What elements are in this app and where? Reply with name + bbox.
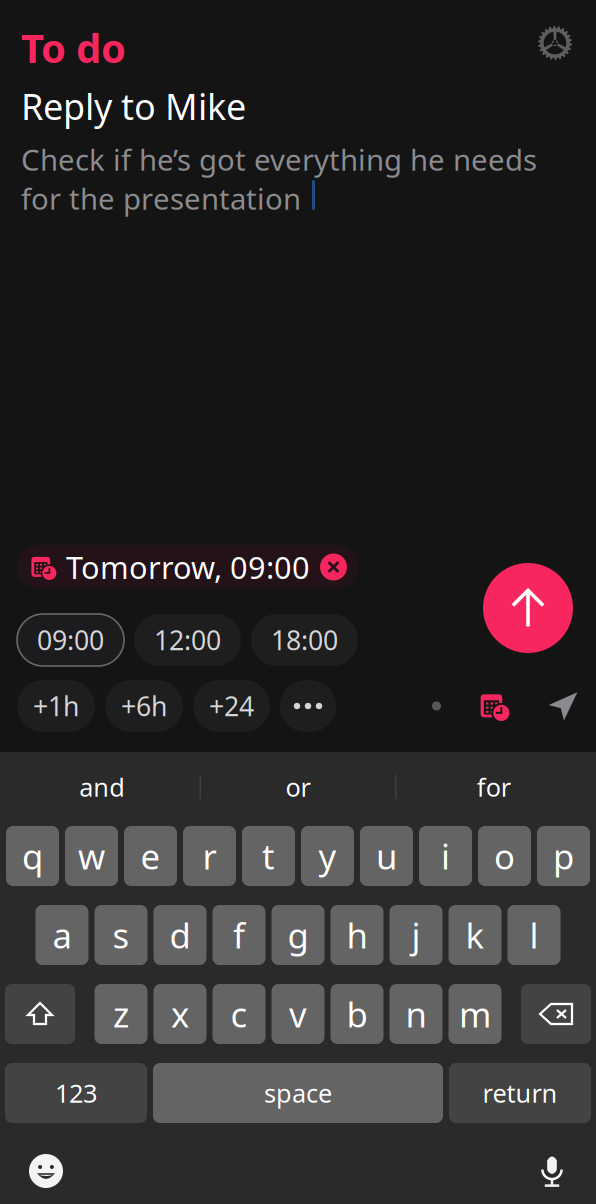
button[interactable]: w xyxy=(65,826,118,886)
staticText: or xyxy=(285,770,310,804)
staticText: 18:00 xyxy=(271,622,338,658)
button[interactable]: m xyxy=(448,984,501,1044)
staticText: c xyxy=(230,991,247,1037)
staticText: i xyxy=(441,833,450,879)
button[interactable]: u xyxy=(360,826,413,886)
button[interactable]: Emoji xyxy=(29,1154,63,1188)
button[interactable]: Tomorrow, 09:00 xyxy=(17,545,358,589)
staticText: e xyxy=(140,833,160,879)
staticText: r xyxy=(202,833,216,879)
button[interactable]: Pick date xyxy=(479,691,509,721)
button[interactable]: z xyxy=(94,984,147,1044)
button[interactable]: g xyxy=(271,905,324,965)
button[interactable]: 18:00 xyxy=(251,614,358,666)
staticText: Check if he’s got everything he needs fo… xyxy=(21,140,537,218)
button[interactable]: space xyxy=(153,1063,443,1123)
staticText: y xyxy=(318,833,336,879)
button[interactable]: and xyxy=(5,765,200,809)
staticText: z xyxy=(113,991,129,1037)
button[interactable]: t xyxy=(242,826,295,886)
staticText: w xyxy=(78,833,105,879)
button[interactable]: c xyxy=(212,984,265,1044)
button[interactable]: Send xyxy=(483,563,573,653)
staticText: v xyxy=(289,991,307,1037)
button[interactable]: y xyxy=(301,826,354,886)
button[interactable]: q xyxy=(6,826,59,886)
button[interactable]: s xyxy=(94,905,147,965)
button[interactable]: Send xyxy=(547,690,579,722)
staticText: k xyxy=(465,912,484,958)
staticText: q xyxy=(22,833,43,879)
staticText: b xyxy=(346,991,367,1037)
staticText: 123 xyxy=(55,1076,97,1110)
button[interactable]: f xyxy=(212,905,265,965)
button[interactable]: 09:00 xyxy=(17,614,124,666)
button[interactable]: d xyxy=(153,905,206,965)
staticText: return xyxy=(482,1076,557,1110)
button[interactable]: +24 xyxy=(193,680,270,732)
button[interactable]: x xyxy=(153,984,206,1044)
button[interactable]: or xyxy=(201,765,395,809)
staticText: for xyxy=(477,770,511,804)
button[interactable]: o xyxy=(478,826,531,886)
button[interactable]: Settings xyxy=(538,26,572,60)
staticText: a xyxy=(52,912,71,958)
button[interactable]: j xyxy=(389,905,442,965)
button[interactable]: a xyxy=(35,905,88,965)
staticText: g xyxy=(287,912,308,958)
staticText: j xyxy=(411,912,420,958)
button[interactable]: +1h xyxy=(17,680,95,732)
staticText: x xyxy=(171,991,189,1037)
staticText: p xyxy=(553,833,574,879)
button[interactable]: More options xyxy=(280,680,336,732)
button[interactable]: Dictate xyxy=(537,1153,567,1189)
button[interactable]: for xyxy=(396,765,591,809)
button[interactable]: p xyxy=(537,826,590,886)
button[interactable]: k xyxy=(448,905,501,965)
staticText: space xyxy=(264,1076,332,1110)
staticText: +24 xyxy=(209,688,254,724)
staticText: Tomorrow, 09:00 xyxy=(66,547,310,587)
button[interactable]: 123 xyxy=(5,1063,147,1123)
button[interactable]: n xyxy=(389,984,442,1044)
button[interactable]: Shift xyxy=(5,984,75,1044)
staticText: l xyxy=(529,912,538,958)
button[interactable]: +6h xyxy=(105,680,183,732)
staticText: +1h xyxy=(33,688,79,724)
staticText: o xyxy=(494,833,515,879)
button[interactable]: l xyxy=(507,905,560,965)
button[interactable]: return xyxy=(449,1063,591,1123)
staticText: h xyxy=(346,912,367,958)
staticText: and xyxy=(79,770,125,804)
staticText: u xyxy=(376,833,397,879)
staticText: m xyxy=(459,991,491,1037)
staticText: 09:00 xyxy=(37,622,104,658)
button[interactable]: 12:00 xyxy=(134,614,241,666)
button[interactable]: r xyxy=(183,826,236,886)
button[interactable]: i xyxy=(419,826,472,886)
staticText: Reply to Mike xyxy=(21,82,246,130)
staticText: n xyxy=(405,991,426,1037)
button[interactable]: b xyxy=(330,984,383,1044)
button[interactable]: Delete xyxy=(521,984,591,1044)
button[interactable]: h xyxy=(330,905,383,965)
staticText: +6h xyxy=(121,688,167,724)
button[interactable]: e xyxy=(124,826,177,886)
staticText: 12:00 xyxy=(154,622,221,658)
staticText: To do xyxy=(21,21,126,74)
staticText: s xyxy=(112,912,129,958)
staticText: t xyxy=(262,833,275,879)
staticText: d xyxy=(169,912,190,958)
staticText: f xyxy=(233,912,245,958)
button[interactable]: v xyxy=(271,984,324,1044)
